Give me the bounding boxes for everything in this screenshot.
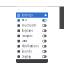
button[interactable]: Settings: [16, 12, 48, 18]
staticText: Hotspot: [22, 34, 33, 38]
button[interactable]: Hotspot: [16, 33, 48, 38]
button[interactable]: Wi-Fi: [16, 18, 48, 23]
button[interactable]: Sounds: [16, 49, 48, 54]
staticText: Data: [22, 39, 27, 43]
button[interactable]: Data: [16, 39, 48, 44]
staticText: Settings: [22, 13, 33, 17]
staticText: Notifications: [22, 44, 39, 48]
staticText: Wi-Fi: [22, 19, 28, 22]
staticText: Sounds: [22, 50, 32, 53]
button[interactable]: Display: [16, 54, 48, 59]
staticText: 9:41: [18, 8, 21, 10]
staticText: Display: [22, 55, 31, 58]
staticText: Bluetooth: [22, 24, 37, 27]
button[interactable]: Notifications: [16, 44, 48, 49]
staticText: LTE: [43, 8, 46, 10]
staticText: Airplane: [22, 29, 34, 32]
button[interactable]: Bluetooth: [16, 23, 48, 28]
button[interactable]: Airplane: [16, 28, 48, 33]
